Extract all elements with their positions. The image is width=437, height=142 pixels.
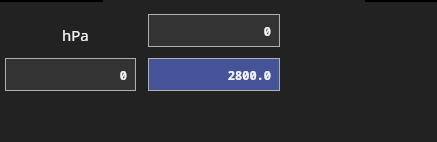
staticText: 0: [263, 23, 271, 39]
staticText: 0: [119, 67, 127, 83]
staticText: 2800.0: [227, 67, 271, 83]
button[interactable]: Pressure value in hectopascal: [148, 14, 280, 47]
button[interactable]: Minimum value: [5, 58, 136, 91]
staticText: hPa: [62, 25, 89, 45]
button[interactable]: Maximum value: [148, 58, 280, 91]
